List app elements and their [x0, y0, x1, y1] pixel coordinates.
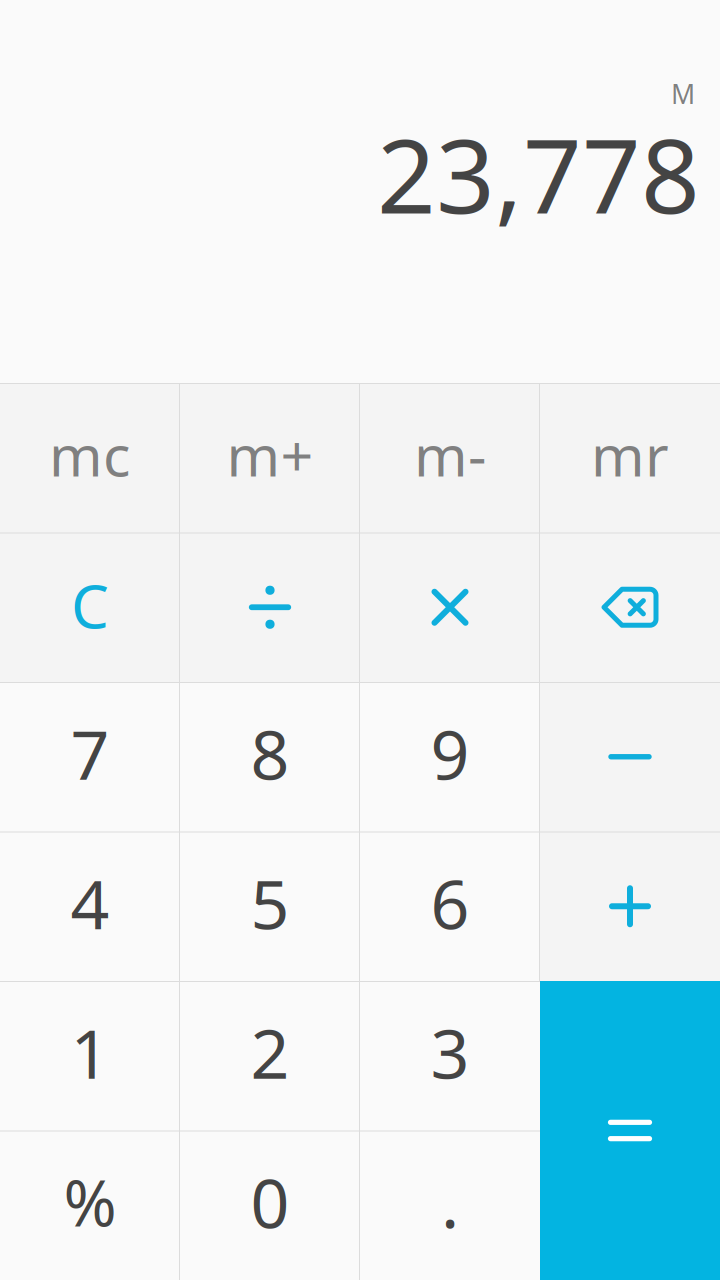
staticText: 3	[430, 1007, 469, 1097]
staticText: .	[441, 1157, 459, 1247]
staticText: 7	[70, 708, 109, 798]
button[interactable]: 2	[180, 981, 360, 1130]
staticText: m-	[414, 416, 486, 492]
button[interactable]: 8	[180, 682, 360, 831]
button[interactable]: 5	[180, 831, 360, 981]
button[interactable]: 7	[0, 682, 180, 831]
button[interactable]: Backspace	[540, 532, 720, 682]
button[interactable]: mc	[0, 383, 180, 532]
button[interactable]: 4	[0, 831, 180, 981]
button[interactable]: Divide	[180, 532, 360, 682]
button[interactable]: 3	[360, 981, 540, 1130]
staticText: 8	[250, 708, 289, 798]
button[interactable]: Equals	[540, 981, 720, 1280]
button[interactable]: Subtract	[540, 682, 720, 831]
staticText: m+	[226, 416, 313, 492]
staticText: M	[671, 76, 695, 111]
button[interactable]: m-	[360, 383, 540, 532]
staticText: 0	[250, 1157, 289, 1247]
button[interactable]: 0	[180, 1130, 360, 1280]
button[interactable]: mr	[540, 383, 720, 532]
button[interactable]: Multiply	[360, 532, 540, 682]
button[interactable]: 6	[360, 831, 540, 981]
staticText: mc	[49, 416, 131, 492]
button[interactable]: C	[0, 532, 180, 682]
staticText: 9	[430, 708, 469, 798]
staticText: %	[63, 1159, 116, 1244]
button[interactable]: m+	[180, 383, 360, 532]
staticText: 23,778	[377, 105, 700, 242]
staticText: C	[71, 565, 109, 645]
button[interactable]: 9	[360, 682, 540, 831]
staticText: 2	[250, 1007, 289, 1097]
staticText: 6	[430, 858, 469, 948]
button[interactable]: 1	[0, 981, 180, 1130]
staticText: 1	[70, 1007, 109, 1097]
button[interactable]: Add	[540, 831, 720, 981]
staticText: 5	[250, 858, 289, 948]
button[interactable]: %	[0, 1130, 180, 1280]
staticText: 4	[70, 858, 109, 948]
button[interactable]: .	[360, 1130, 540, 1280]
staticText: mr	[591, 416, 669, 492]
